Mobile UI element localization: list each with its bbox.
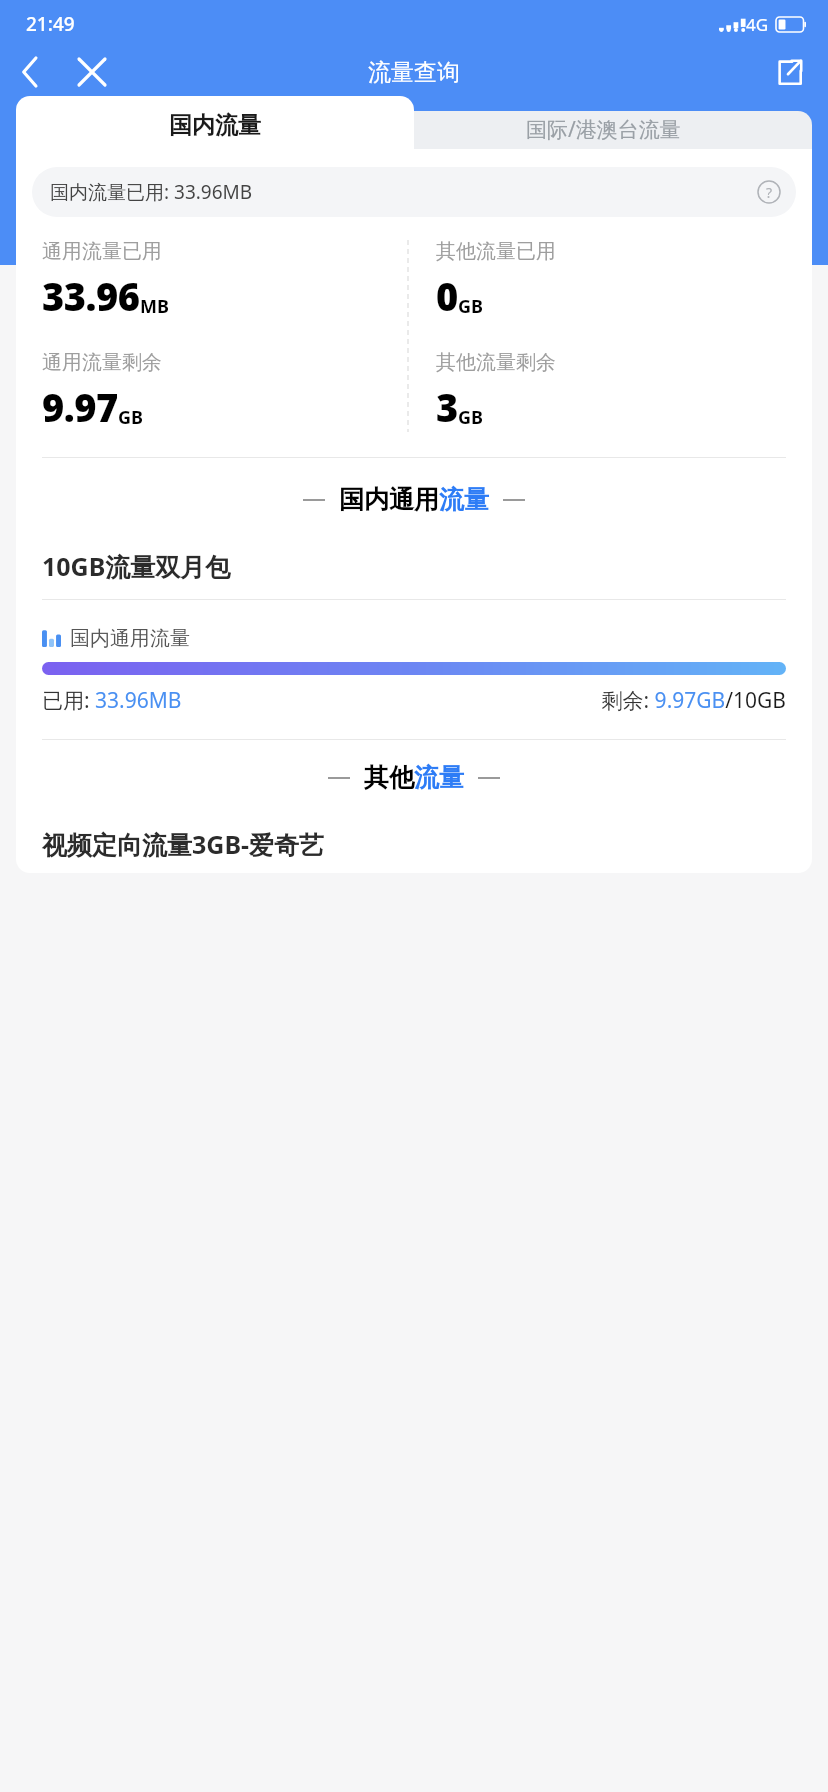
staticText: 其他流量剩余 bbox=[436, 350, 556, 375]
staticText: 通用流量已用 bbox=[42, 239, 162, 264]
staticText: 已用: 33.96MB bbox=[42, 686, 182, 715]
staticText: 33.96 bbox=[42, 270, 140, 322]
staticText: 国内通用流量 bbox=[70, 626, 190, 651]
button[interactable]: Share bbox=[764, 48, 814, 96]
button[interactable]: 国际/港澳台流量 bbox=[394, 111, 812, 149]
staticText: 国内流量已用: 33.96MB bbox=[50, 179, 253, 205]
staticText: 通用流量剩余 bbox=[42, 350, 162, 375]
staticText: ? bbox=[766, 183, 773, 202]
button[interactable]: 国内流量 bbox=[16, 96, 414, 149]
button[interactable]: Help bbox=[756, 179, 782, 205]
staticText: 其他流量 bbox=[364, 762, 464, 793]
staticText: 21:49 bbox=[26, 11, 75, 37]
staticText: 视频定向流量3GB-爱奇艺 bbox=[42, 827, 325, 861]
staticText: GB bbox=[458, 405, 484, 430]
staticText: 国内通用流量 bbox=[339, 484, 489, 515]
button[interactable]: 国内流量已用: 33.96MB bbox=[32, 167, 796, 217]
staticText: 10GB流量双月包 bbox=[42, 549, 231, 583]
staticText: 国际/港澳台流量 bbox=[526, 115, 681, 144]
staticText: 流量查询 bbox=[368, 58, 460, 87]
staticText: GB bbox=[458, 294, 484, 319]
button[interactable]: Close bbox=[66, 48, 118, 96]
staticText: 国内流量 bbox=[169, 111, 261, 140]
staticText: MB bbox=[140, 294, 169, 319]
staticText: 0 bbox=[436, 270, 458, 322]
staticText: 其他流量已用 bbox=[436, 239, 556, 264]
staticText: 3 bbox=[436, 381, 458, 433]
staticText: 4G bbox=[746, 13, 769, 36]
button[interactable]: Back bbox=[6, 48, 54, 96]
staticText: 9.97 bbox=[42, 381, 118, 433]
staticText: 剩余: 9.97GB/10GB bbox=[601, 686, 786, 715]
staticText: GB bbox=[118, 405, 144, 430]
